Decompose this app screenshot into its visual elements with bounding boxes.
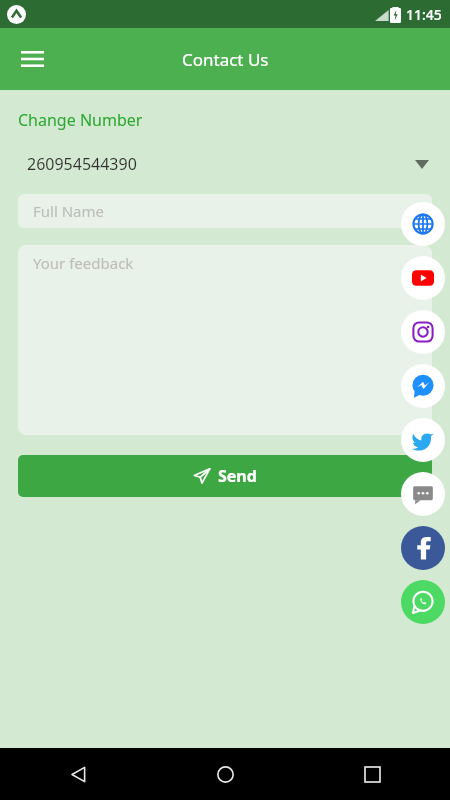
staticText: Full Name [33,201,104,221]
staticText: Your feedback [33,253,134,273]
staticText: 260954544390 [27,153,137,175]
staticText: 11:45 [406,5,442,24]
button[interactable]: YouTube [401,256,445,300]
button[interactable]: Instagram [401,310,445,354]
button[interactable]: WhatsApp [401,580,445,624]
button[interactable]: Facebook [401,526,445,570]
button[interactable]: Twitter [401,418,445,462]
button[interactable]: Your feedback [18,245,432,435]
staticText: Send [218,465,257,487]
staticText: Change Number [18,109,143,131]
button[interactable]: Send [18,455,432,497]
button[interactable]: Recent apps [350,752,394,796]
button[interactable]: Change Number [18,109,143,131]
button[interactable]: 260954544390 [18,147,432,181]
button[interactable]: Home [203,752,247,796]
button[interactable]: Full Name [18,194,432,228]
staticText: Contact Us [182,48,269,71]
button[interactable]: Messenger [401,364,445,408]
button[interactable]: Send SMS [401,472,445,516]
button[interactable]: Website [401,202,445,246]
button[interactable]: Back [56,752,100,796]
button[interactable]: Open navigation menu [12,39,52,79]
